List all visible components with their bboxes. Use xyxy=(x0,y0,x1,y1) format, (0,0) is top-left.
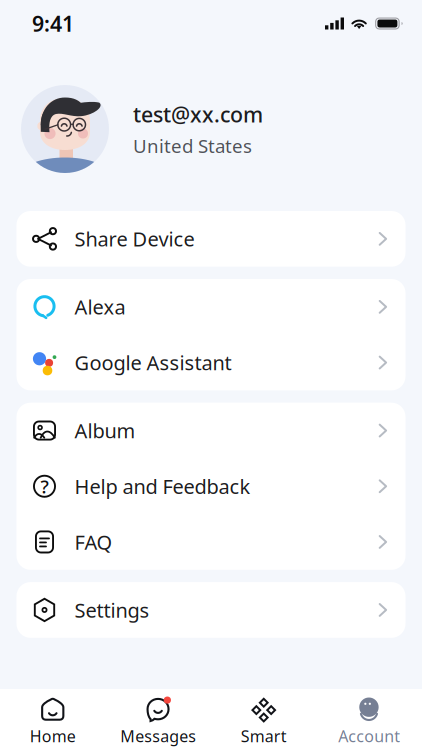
button[interactable]: Smart xyxy=(211,689,316,750)
button[interactable]: Account xyxy=(316,689,422,750)
staticText: 9:41 xyxy=(32,9,74,38)
staticText: Account xyxy=(338,725,400,747)
staticText: Alexa xyxy=(74,294,125,320)
button[interactable]: Settings xyxy=(16,582,405,638)
button[interactable]: Share Device xyxy=(16,211,405,267)
button[interactable]: Messages xyxy=(105,689,211,750)
staticText: United States xyxy=(133,133,252,158)
staticText: FAQ xyxy=(74,529,112,555)
button[interactable]: ? xyxy=(16,458,405,514)
button[interactable]: Alexa xyxy=(16,279,405,335)
staticText: Settings xyxy=(74,597,149,623)
button[interactable]: Album xyxy=(16,403,405,458)
staticText: Share Device xyxy=(74,226,194,252)
staticText: ? xyxy=(40,474,48,499)
button[interactable]: FAQ xyxy=(16,514,405,570)
staticText: Smart xyxy=(241,725,287,747)
staticText: Home xyxy=(30,725,76,747)
button[interactable]: Home xyxy=(0,689,105,750)
staticText: test@xx.com xyxy=(133,100,263,128)
staticText: Help and Feedback xyxy=(74,473,250,500)
button[interactable]: Google Assistant xyxy=(16,335,405,390)
staticText: Google Assistant xyxy=(74,349,231,376)
staticText: Messages xyxy=(120,725,196,747)
staticText: Album xyxy=(74,417,135,444)
